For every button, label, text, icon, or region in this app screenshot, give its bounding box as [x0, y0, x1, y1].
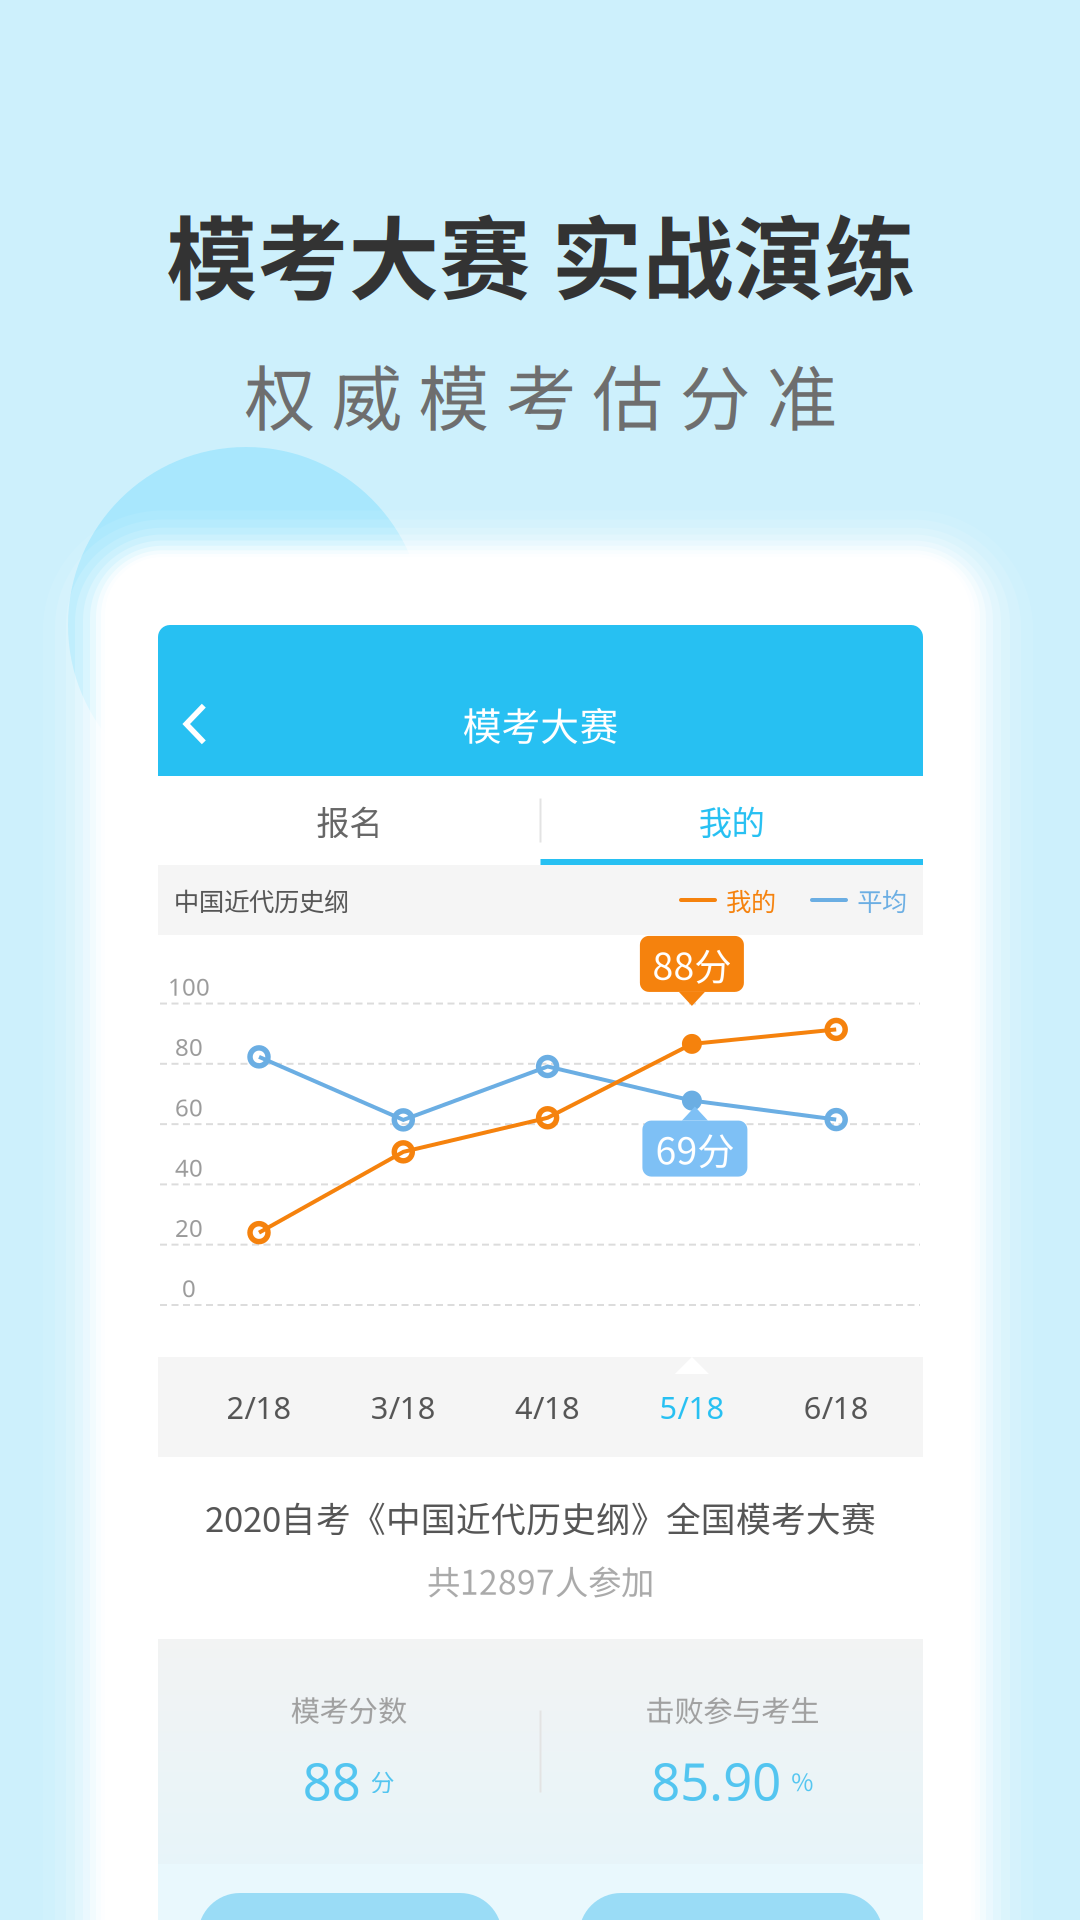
staticText: % [791, 1763, 813, 1798]
staticText: 85.90 [651, 1746, 781, 1815]
staticText: 报名 [316, 796, 382, 845]
button[interactable]: 4/18 [476, 1357, 620, 1457]
button[interactable]: 6/18 [764, 1357, 908, 1457]
staticText: 权 威 模 考 估 分 准 [244, 343, 837, 445]
staticText: 80 [175, 1030, 203, 1063]
button[interactable]: 返回 [149, 676, 241, 772]
staticText: 4/18 [515, 1386, 580, 1428]
staticText: 2/18 [226, 1386, 291, 1428]
staticText: 88 [303, 1746, 361, 1815]
staticText: 20 [175, 1211, 203, 1244]
button[interactable]: 5/18 [620, 1357, 764, 1457]
staticText: 模考大赛 实战演练 [166, 187, 915, 319]
staticText: 3/18 [371, 1386, 436, 1428]
button[interactable]: 数据报告 [198, 1893, 502, 1920]
staticText: 模考分数 [291, 1688, 407, 1730]
staticText: 共12897人参加 [427, 1556, 654, 1604]
staticText: 88分 [652, 937, 731, 991]
staticText: 我的 [726, 882, 776, 918]
staticText: 0 [182, 1272, 196, 1304]
staticText: 100 [168, 970, 210, 1003]
button[interactable]: 我的 [540, 776, 923, 865]
button[interactable]: 考点解析 [579, 1893, 883, 1920]
staticText: 模考大赛 [462, 696, 618, 752]
staticText: 69分 [655, 1122, 734, 1176]
button[interactable]: 2/18 [187, 1357, 331, 1457]
staticText: 5/18 [659, 1386, 724, 1428]
staticText: 6/18 [804, 1386, 869, 1428]
staticText: 2020自考《中国近代历史纲》全国模考大赛 [205, 1492, 876, 1542]
staticText: 分 [371, 1763, 395, 1798]
staticText: 40 [175, 1151, 203, 1184]
staticText: 击败参与考生 [645, 1688, 819, 1730]
staticText: 我的 [699, 796, 765, 845]
staticText: 中国近代历史纲 [174, 882, 349, 918]
staticText: 平均 [857, 882, 907, 918]
button[interactable]: 3/18 [331, 1357, 475, 1457]
staticText: 60 [175, 1091, 203, 1123]
button[interactable]: 报名 [158, 776, 540, 865]
